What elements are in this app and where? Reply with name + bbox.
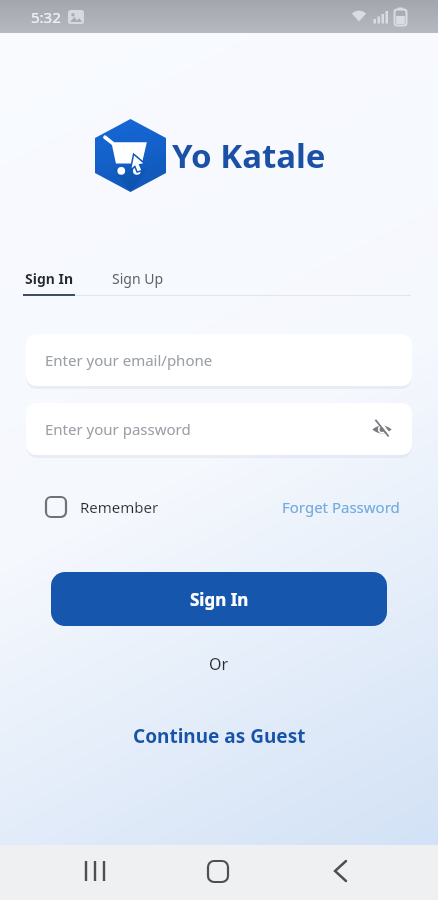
staticText: Sign In [25,269,74,288]
staticText: Enter your password [45,419,191,439]
button[interactable] [146,845,292,900]
staticText: 5:32 [31,7,61,27]
staticText: Remember [80,497,159,517]
button[interactable] [292,845,438,900]
staticText: Or [209,653,229,675]
button[interactable]: Sign Up [112,269,164,288]
button[interactable]: Enter your password [26,403,412,455]
button[interactable]: Remember [45,496,159,518]
button[interactable]: Enter your email/phone [26,334,412,386]
staticText: Enter your email/phone [45,350,213,370]
staticText: Yo Katale [172,133,326,178]
button[interactable]: Sign In [25,269,74,288]
button[interactable] [0,845,146,900]
button[interactable] [366,413,398,445]
button[interactable]: Sign In [51,572,387,626]
button[interactable]: Continue as Guest [133,723,306,749]
button[interactable]: Forget Password [282,497,400,517]
staticText: Sign In [190,588,249,611]
